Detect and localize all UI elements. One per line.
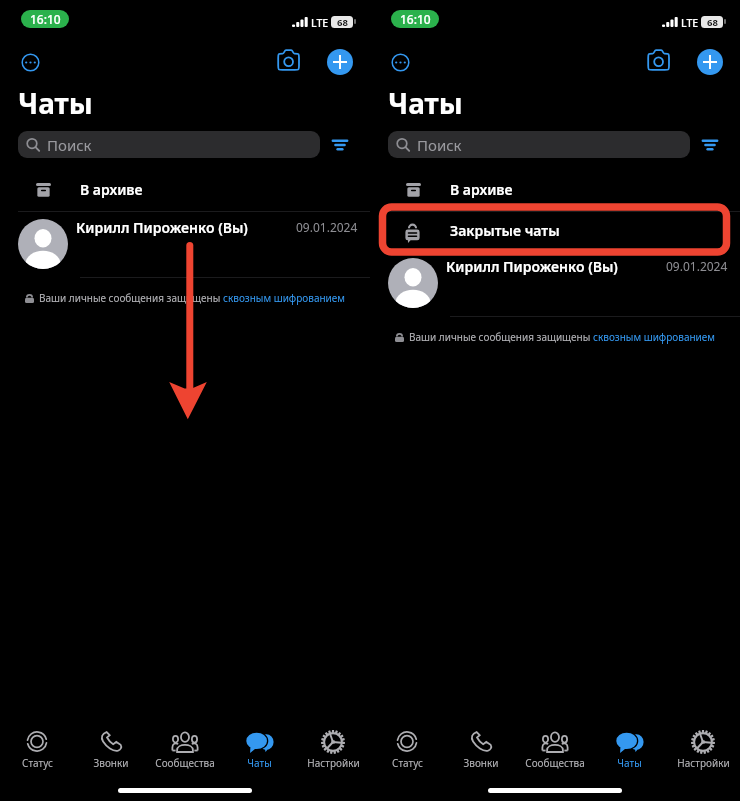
staticText: 16:10 xyxy=(400,11,431,27)
staticText: 68 xyxy=(707,16,718,28)
staticText: LTE xyxy=(311,16,329,30)
staticText: Звонки xyxy=(93,756,129,770)
button[interactable]: сквозным шифрованием xyxy=(223,291,345,305)
button[interactable]: Закрытые чаты xyxy=(370,211,740,250)
button[interactable]: Настройки xyxy=(296,729,370,770)
button[interactable]: Filter xyxy=(701,138,719,152)
button[interactable]: More options xyxy=(16,48,45,77)
staticText: Чаты xyxy=(617,756,642,770)
staticText: Звонки xyxy=(463,756,499,770)
staticText: Поиск xyxy=(417,135,462,155)
button[interactable]: Сообщества xyxy=(518,729,592,770)
staticText: Статус xyxy=(392,756,423,770)
button[interactable]: сквозным шифрованием xyxy=(593,330,715,344)
button[interactable]: В архиве xyxy=(370,170,740,209)
button[interactable]: Звонки xyxy=(444,729,518,770)
staticText: Кирилл Пироженко (Вы) xyxy=(76,218,248,237)
staticText: Настройки xyxy=(677,756,730,770)
button[interactable]: Filter xyxy=(331,138,349,152)
staticText: В архиве xyxy=(450,180,513,199)
button[interactable]: New chat xyxy=(327,49,353,75)
button[interactable]: Camera xyxy=(644,48,673,77)
staticText: Ваши личные сообщения защищены xyxy=(39,291,223,305)
staticText: 09.01.2024 xyxy=(666,258,728,274)
button[interactable]: More options xyxy=(386,48,415,77)
button[interactable]: Сообщества xyxy=(148,729,222,770)
button[interactable]: Звонки xyxy=(74,729,148,770)
staticText: Чаты xyxy=(247,756,272,770)
button[interactable]: Настройки xyxy=(666,729,740,770)
button[interactable]: Чаты xyxy=(222,729,296,770)
button[interactable]: Кирилл Пироженко (Вы) xyxy=(370,250,740,316)
staticText: Статус xyxy=(22,756,53,770)
button[interactable]: Поиск xyxy=(18,131,320,158)
staticText: Чаты xyxy=(18,84,93,122)
staticText: Настройки xyxy=(307,756,360,770)
staticText: 16:10 xyxy=(30,11,61,27)
staticText: 09.01.2024 xyxy=(296,219,358,235)
button[interactable]: Кирилл Пироженко (Вы) xyxy=(0,211,370,277)
staticText: Сообщества xyxy=(155,756,215,770)
staticText: Закрытые чаты xyxy=(450,221,560,240)
button[interactable]: Поиск xyxy=(388,131,690,158)
button[interactable]: Camera xyxy=(274,48,303,77)
staticText: Сообщества xyxy=(525,756,585,770)
staticText: Поиск xyxy=(47,135,92,155)
button[interactable]: New chat xyxy=(697,49,723,75)
staticText: 68 xyxy=(337,16,348,28)
staticText: Кирилл Пироженко (Вы) xyxy=(446,257,618,276)
staticText: Чаты xyxy=(388,84,463,122)
staticText: Ваши личные сообщения защищены xyxy=(409,330,593,344)
button[interactable]: В архиве xyxy=(0,170,370,209)
staticText: В архиве xyxy=(80,180,143,199)
button[interactable]: Статус xyxy=(370,729,444,770)
button[interactable]: Статус xyxy=(0,729,74,770)
staticText: LTE xyxy=(681,16,699,30)
button[interactable]: Чаты xyxy=(592,729,666,770)
